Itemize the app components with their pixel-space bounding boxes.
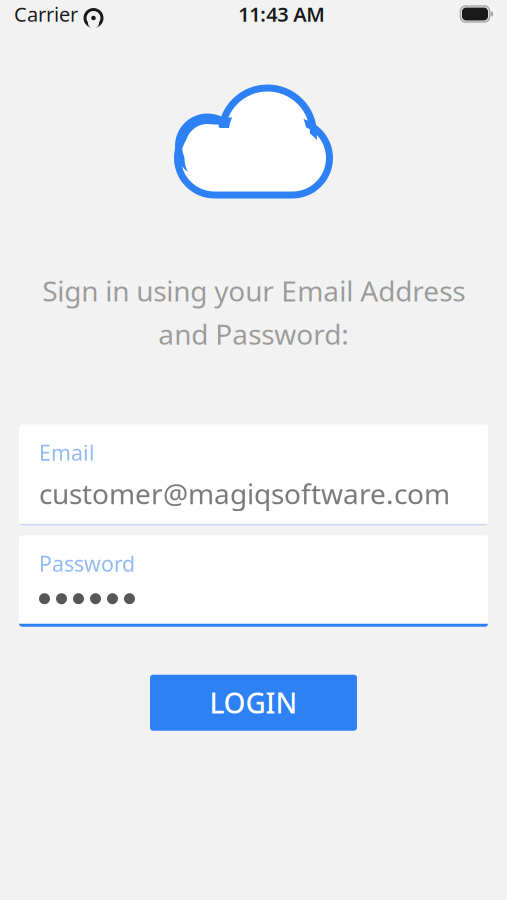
staticText: Sign in using your Email Address and Pas… [42,272,465,352]
staticText: Email [39,438,95,467]
button[interactable]: Email [19,424,488,525]
staticText: LOGIN [209,684,297,721]
staticText: Password [39,549,135,578]
staticText: Carrier [14,1,78,27]
staticText: 11:43 AM [238,1,325,27]
button[interactable]: LOGIN [150,675,357,731]
staticText: customer@magiqsoftware.com [39,475,450,512]
button[interactable]: Password [19,535,488,627]
